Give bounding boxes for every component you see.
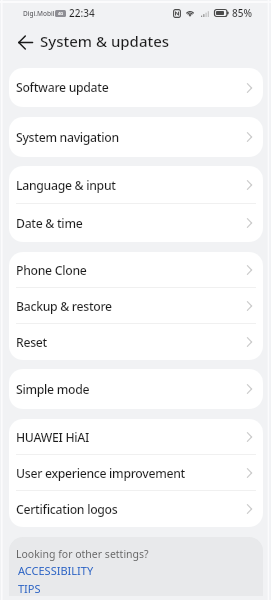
staticText: Reset [16,334,247,351]
button[interactable]: User experience improvement [9,455,263,491]
staticText: System & updates [40,31,170,51]
staticText: Simple mode [16,381,247,398]
staticText: Phone Clone [16,262,247,279]
staticText: Certification logos [16,501,247,518]
staticText: 4G [58,11,64,16]
staticText: Software update [16,79,247,96]
button[interactable]: Certification logos [9,491,263,527]
staticText: User experience improvement [16,465,247,482]
staticText: 85% [232,6,252,20]
staticText: 22:34 [69,6,95,20]
button[interactable]: Software update [9,68,263,107]
staticText: ACCESSIBILITY [18,563,94,578]
button[interactable]: HUAWEI HiAI [9,419,263,455]
staticText: Backup & restore [16,298,247,315]
button[interactable]: Reset [9,324,263,360]
staticText: HUAWEI HiAI [16,429,247,446]
button[interactable]: TIPS [9,578,263,596]
button[interactable]: System navigation [9,117,263,157]
button[interactable]: Phone Clone [9,252,263,288]
button[interactable]: Backup & restore [9,288,263,324]
button[interactable]: Date & time [9,204,263,242]
staticText: Looking for other settings? [16,547,149,561]
staticText: Language & input [16,177,247,194]
staticText: TIPS [18,581,41,596]
staticText: System navigation [16,129,247,146]
staticText: Digi.Mobil [23,9,55,18]
button[interactable]: Language & input [9,166,263,204]
staticText: Date & time [16,215,247,232]
button[interactable]: Simple mode [9,369,263,409]
button[interactable]: ACCESSIBILITY [9,561,263,578]
button[interactable]: Back [12,29,38,55]
